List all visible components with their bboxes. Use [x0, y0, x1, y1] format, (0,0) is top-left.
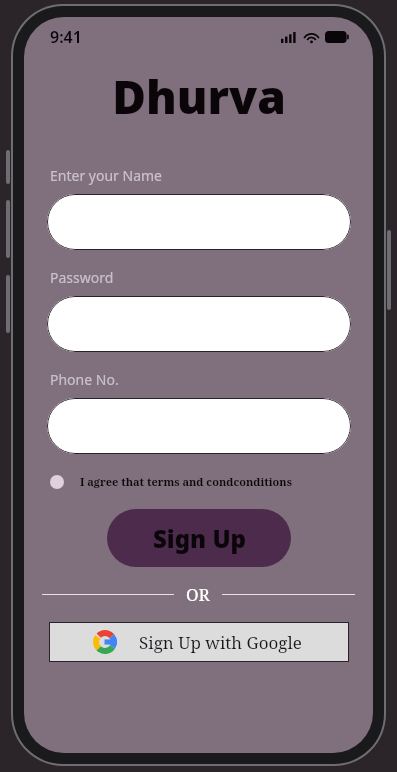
button[interactable]: I agree that terms and condconditions [50, 474, 353, 489]
other: Google logo [93, 630, 117, 654]
staticText: Enter your Name [50, 166, 162, 185]
staticText: Password [50, 268, 114, 287]
button[interactable] [47, 398, 351, 454]
staticText: Sign Up [153, 522, 246, 555]
button[interactable]: Sign Up [107, 509, 291, 567]
staticText: I agree that terms and condconditions [80, 474, 293, 489]
button[interactable] [47, 194, 351, 250]
staticText: OR [186, 583, 210, 606]
staticText: Sign Up with Google [139, 631, 302, 654]
staticText: Dhurva [112, 65, 286, 128]
staticText: 9:41 [50, 26, 82, 48]
staticText: Phone No. [50, 370, 119, 389]
button[interactable]: Google logo [49, 622, 349, 662]
button[interactable] [47, 296, 351, 352]
